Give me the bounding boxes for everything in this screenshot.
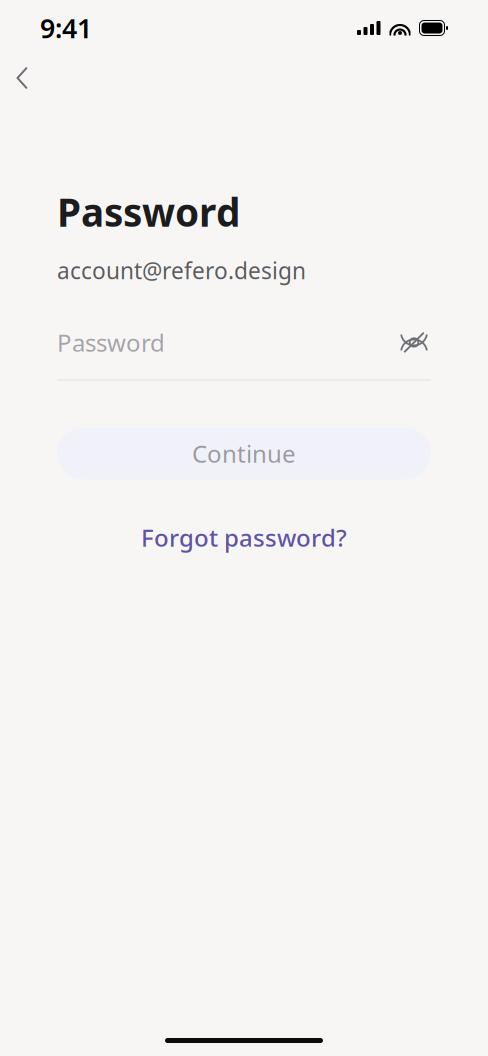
- staticText: 9:41: [40, 10, 92, 46]
- staticText: Password: [57, 326, 165, 358]
- button[interactable]: Continue: [57, 427, 431, 479]
- button[interactable]: Show password: [397, 327, 431, 357]
- button[interactable]: Back: [0, 56, 44, 100]
- button[interactable]: Forgot password?: [133, 515, 355, 559]
- staticText: Continue: [192, 437, 296, 469]
- staticText: account@refero.design: [57, 255, 306, 285]
- staticText: Password: [57, 186, 240, 237]
- staticText: Forgot password?: [141, 521, 347, 553]
